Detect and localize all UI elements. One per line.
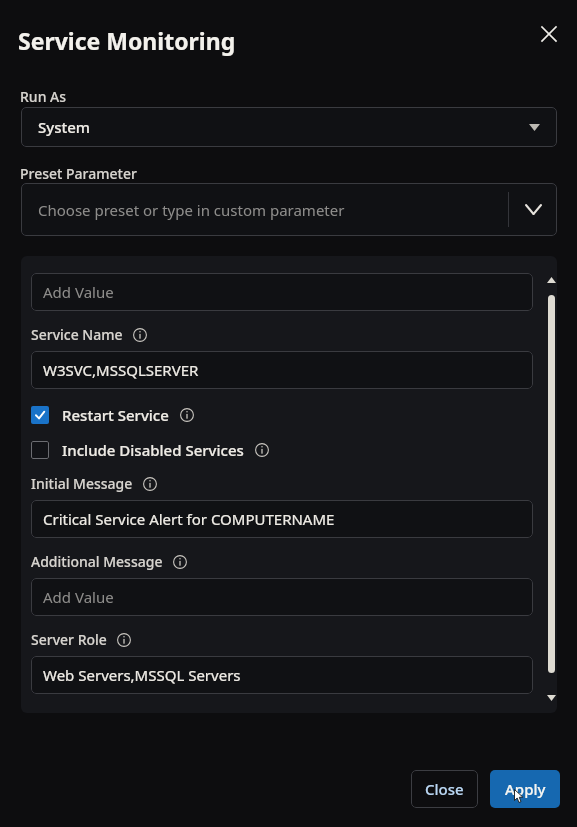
button[interactable]: Add Value (31, 578, 533, 616)
staticText: Include Disabled Services (62, 440, 244, 460)
staticText: Service Monitoring (18, 25, 236, 56)
button[interactable]: More info about Include Disabled Service… (253, 441, 271, 459)
button[interactable]: Restart Service (31, 403, 196, 427)
button[interactable]: Scroll down (545, 692, 557, 704)
button[interactable]: Apply (490, 770, 560, 808)
button[interactable]: Include Disabled Services (31, 438, 271, 462)
button[interactable]: Choose preset or type in custom paramete… (21, 183, 557, 236)
staticText: Additional Message (31, 552, 163, 571)
button[interactable]: Add Value (31, 273, 533, 311)
button[interactable]: Close dialog (534, 19, 563, 48)
staticText: Server Role (31, 630, 107, 649)
button[interactable]: System (21, 107, 557, 147)
button[interactable]: W3SVC,MSSQLSERVER (31, 351, 533, 389)
staticText: Preset Parameter (20, 164, 137, 183)
staticText: Restart Service (62, 405, 169, 425)
staticText: Service Name (31, 325, 123, 344)
button[interactable]: More info about Restart Service (178, 406, 196, 424)
button[interactable]: Scrollbar thumb (548, 295, 555, 673)
staticText: Run As (20, 87, 67, 106)
staticText: Add Value (43, 282, 114, 302)
button[interactable]: More info about Service Name (131, 326, 149, 344)
staticText: System (38, 117, 91, 137)
staticText: Close (425, 779, 464, 799)
button[interactable]: More info about Initial Message (141, 475, 159, 493)
staticText: Critical Service Alert for COMPUTERNAME (43, 509, 335, 529)
staticText: Web Servers,MSSQL Servers (43, 665, 241, 685)
button[interactable]: Scroll up (545, 274, 557, 286)
button[interactable]: Close (411, 770, 478, 808)
staticText: Choose preset or type in custom paramete… (38, 200, 345, 220)
button[interactable]: More info about Additional Message (171, 553, 189, 571)
staticText: Apply (505, 779, 546, 799)
staticText: Initial Message (31, 474, 133, 493)
button[interactable]: Critical Service Alert for COMPUTERNAME (31, 500, 533, 538)
staticText: Add Value (43, 587, 114, 607)
button[interactable]: More info about Server Role (115, 631, 133, 649)
staticText: W3SVC,MSSQLSERVER (43, 360, 199, 380)
button[interactable]: Web Servers,MSSQL Servers (31, 656, 533, 694)
